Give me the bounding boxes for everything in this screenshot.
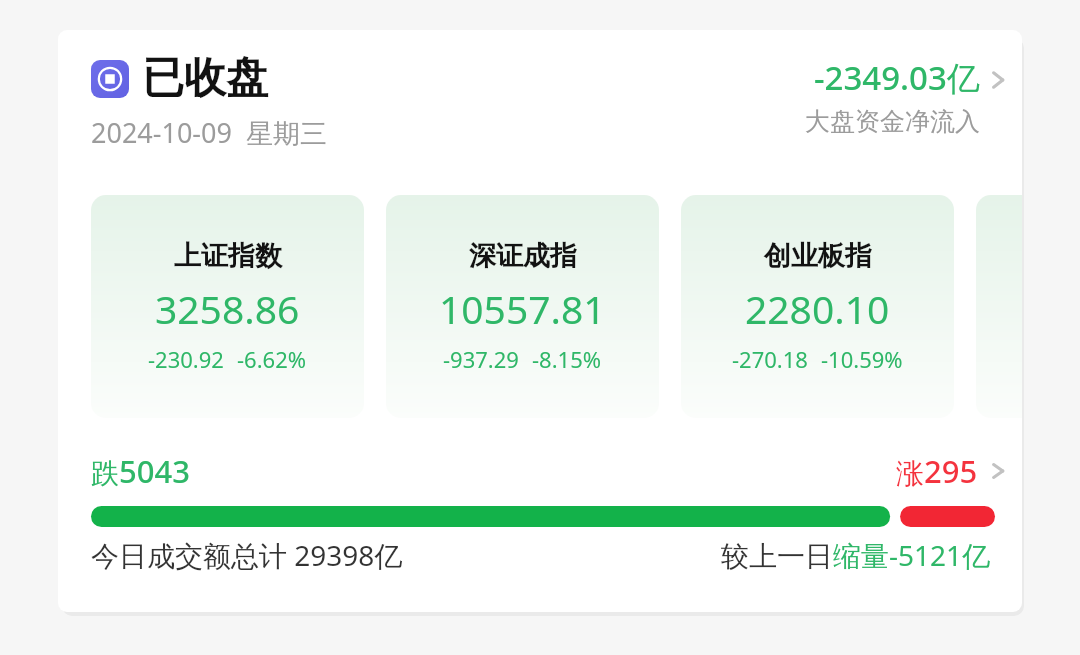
staticText: 涨295	[896, 450, 978, 492]
button[interactable]: 大盘资金净流入详情	[988, 62, 1008, 98]
staticText: -230.92	[148, 344, 224, 374]
staticText: 大盘资金净流入	[805, 106, 980, 137]
staticText: -2349.03亿	[814, 55, 980, 100]
staticText: 2024-10-09 星期三	[91, 114, 327, 151]
staticText: 创业板指	[764, 239, 872, 273]
staticText: 深证成指	[469, 239, 577, 273]
button[interactable]: 上证指数	[91, 195, 364, 418]
button[interactable]: 已收盘	[91, 52, 1008, 151]
button[interactable]: 深证成指	[386, 195, 659, 418]
staticText: 上证指数	[174, 239, 282, 273]
staticText: 10557.81	[439, 282, 606, 335]
staticText: -8.15%	[532, 344, 602, 374]
staticText: 2280.10	[745, 282, 890, 335]
staticText: 已收盘	[142, 52, 268, 105]
button[interactable]	[976, 195, 1022, 418]
staticText: -6.62%	[237, 344, 307, 374]
button[interactable]: 创业板指	[681, 195, 954, 418]
staticText: 跌5043	[91, 450, 190, 492]
staticText: -10.59%	[821, 344, 903, 374]
staticText: 今日成交额总计 29398亿	[91, 536, 403, 574]
staticText: -937.29	[443, 344, 519, 374]
staticText: -270.18	[732, 344, 808, 374]
button[interactable]: 跌5043	[91, 450, 1008, 527]
staticText: 较上一日缩量-5121亿	[721, 536, 991, 574]
staticText: 3258.86	[155, 282, 300, 335]
